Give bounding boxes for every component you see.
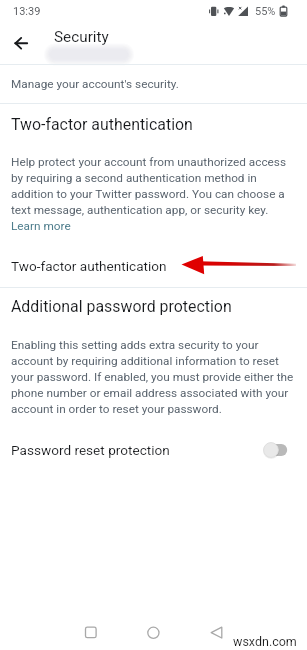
button[interactable]: Home xyxy=(142,621,164,643)
staticText: Manage your account's security. xyxy=(11,77,179,91)
staticText: Security xyxy=(54,28,109,46)
button[interactable]: Back xyxy=(206,621,228,643)
staticText: Additional password protection xyxy=(11,297,232,316)
button[interactable]: Recent apps xyxy=(80,621,102,643)
staticText: Help protect your account from unauthori… xyxy=(11,153,295,217)
staticText: Two-factor authentication xyxy=(11,258,167,274)
button[interactable]: Password reset protection xyxy=(0,435,307,465)
button[interactable]: Password reset protection toggle xyxy=(263,439,289,461)
button[interactable]: Learn more xyxy=(11,219,71,233)
staticText: Enabling this setting adds extra securit… xyxy=(11,336,295,416)
staticText: 13:39 xyxy=(13,5,41,18)
staticText: wsxdn.com xyxy=(233,634,297,649)
staticText: Password reset protection xyxy=(11,442,170,458)
button[interactable]: Two-factor authentication xyxy=(0,249,307,283)
staticText: 55% xyxy=(255,5,276,18)
button[interactable]: Manage your account's security. xyxy=(0,64,307,103)
staticText: Two-factor authentication xyxy=(11,115,193,134)
button[interactable]: Back xyxy=(9,31,33,55)
